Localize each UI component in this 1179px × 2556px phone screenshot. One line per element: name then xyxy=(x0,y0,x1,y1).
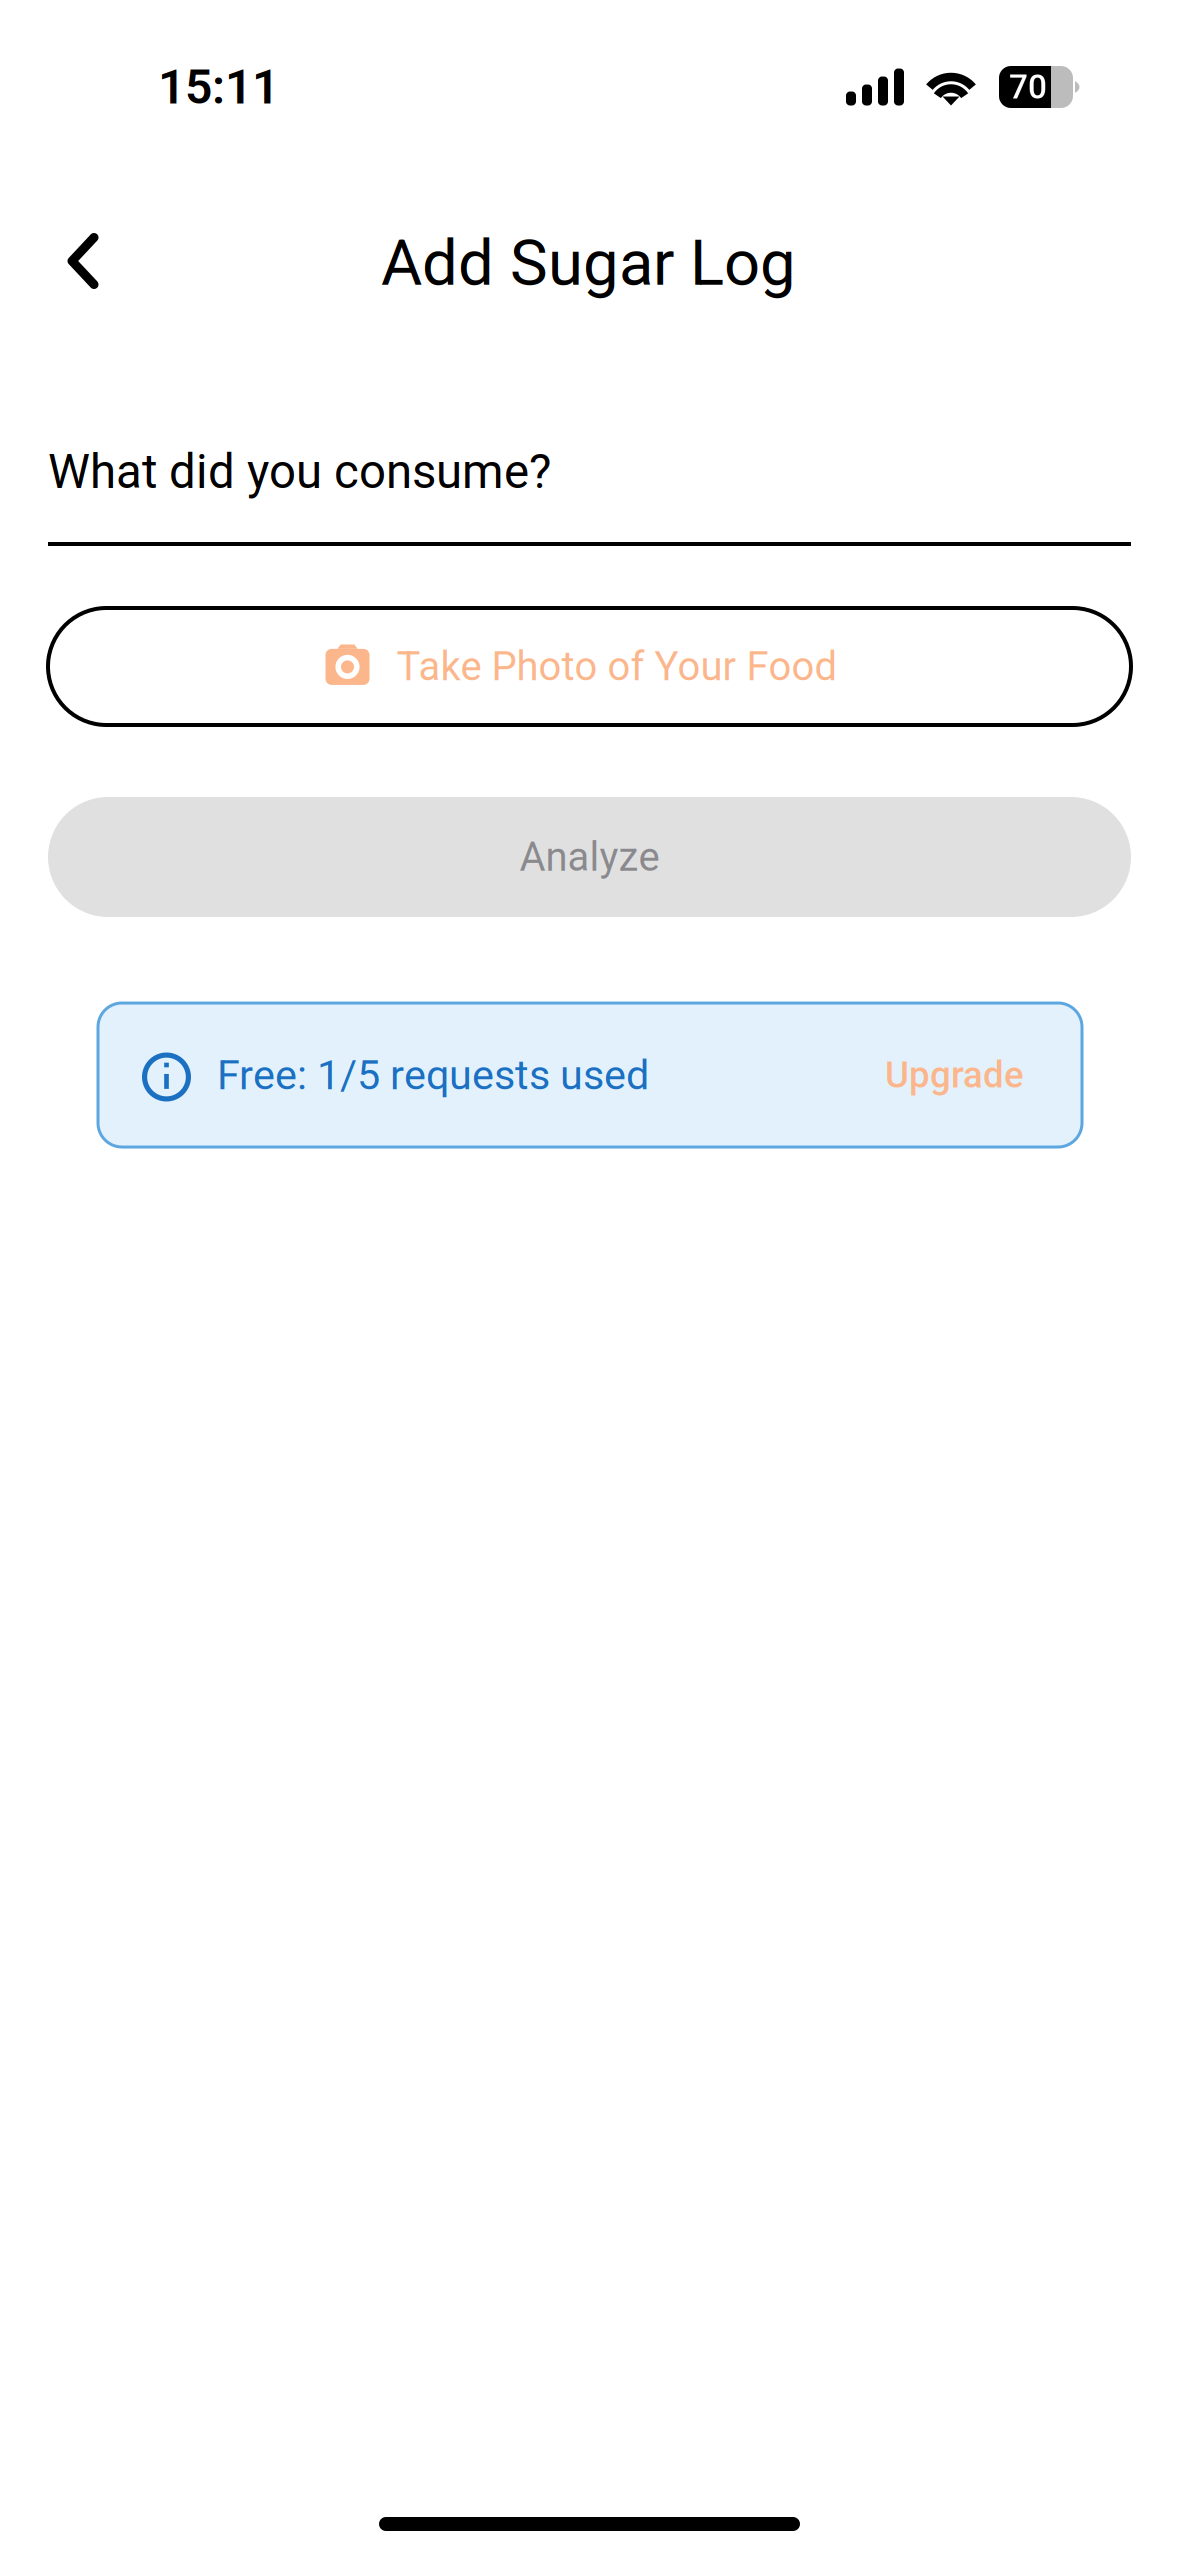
staticText: 70 xyxy=(1009,67,1047,107)
staticText: Free: 1/5 requests used xyxy=(217,1051,649,1099)
staticText: Upgrade xyxy=(885,1053,1024,1096)
button[interactable]: Analyze xyxy=(48,797,1131,917)
button[interactable]: What did you consume? xyxy=(48,444,1131,546)
staticText: What did you consume? xyxy=(48,444,551,499)
button[interactable]: Upgrade xyxy=(885,1053,1024,1096)
button[interactable]: Take Photo of Your Food xyxy=(48,608,1131,725)
button[interactable]: Back xyxy=(35,213,131,309)
staticText: Add Sugar Log xyxy=(381,226,796,300)
staticText: Take Photo of Your Food xyxy=(396,643,837,690)
staticText: Analyze xyxy=(519,834,659,880)
staticText: 15:11 xyxy=(158,59,279,115)
